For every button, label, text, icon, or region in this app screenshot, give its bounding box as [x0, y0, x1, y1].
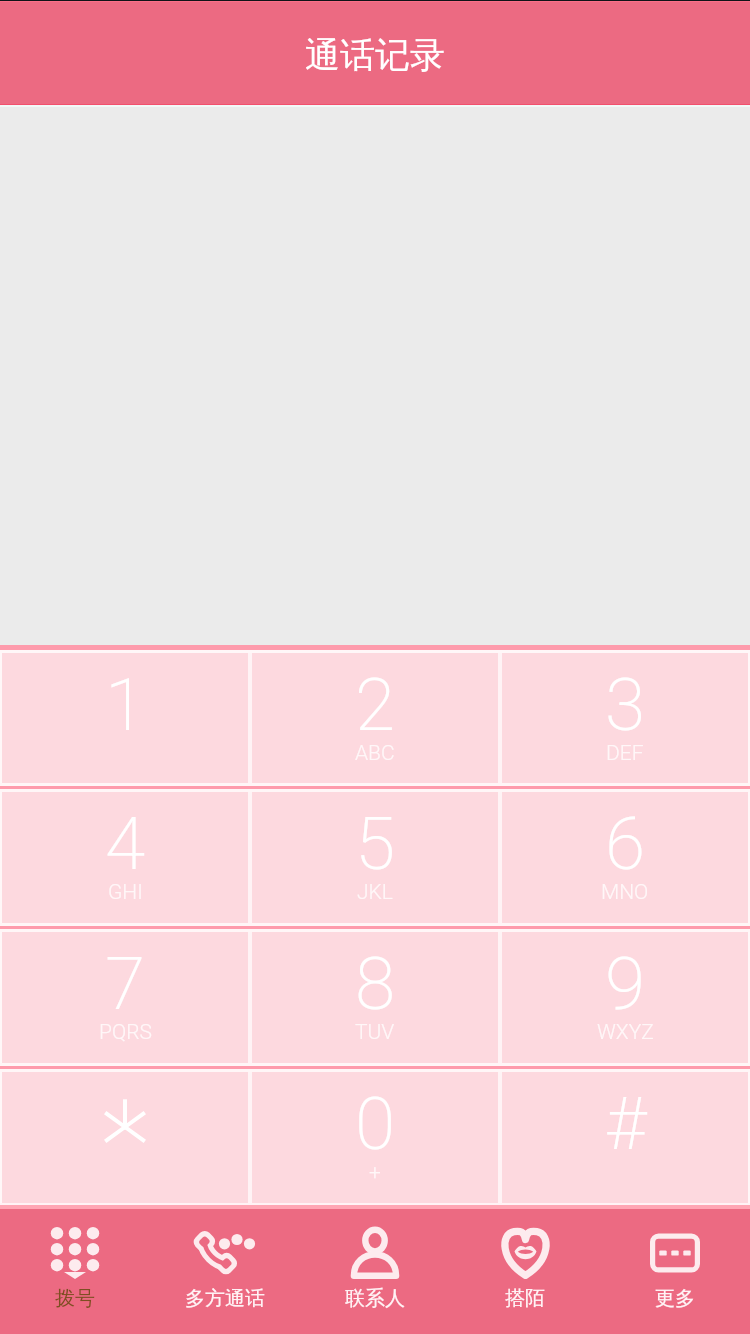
- button[interactable]: 5: [252, 792, 498, 923]
- staticText: 联系人: [345, 1286, 405, 1311]
- staticText: 5: [355, 801, 396, 887]
- staticText: 0: [355, 1081, 396, 1167]
- staticText: 2: [355, 662, 396, 748]
- staticText: 搭陌: [505, 1286, 545, 1311]
- staticText: PQRS: [99, 1020, 152, 1045]
- button[interactable]: [2, 1072, 248, 1203]
- staticText: 更多: [655, 1286, 695, 1311]
- staticText: 1: [105, 662, 146, 748]
- button[interactable]: Match: [450, 1209, 600, 1334]
- button[interactable]: More: [600, 1209, 750, 1334]
- staticText: GHI: [108, 880, 143, 905]
- button[interactable]: Contacts: [300, 1209, 450, 1334]
- button[interactable]: 0: [252, 1072, 498, 1203]
- staticText: 7: [105, 941, 146, 1027]
- staticText: MNO: [601, 880, 649, 905]
- button[interactable]: Dialpad: [0, 1209, 150, 1334]
- staticText: #: [605, 1081, 646, 1167]
- button[interactable]: 6: [502, 792, 748, 923]
- staticText: TUV: [355, 1020, 395, 1045]
- button[interactable]: 8: [252, 932, 498, 1063]
- staticText: 拨号: [55, 1286, 95, 1311]
- staticText: 多方通话: [185, 1286, 265, 1311]
- button[interactable]: 3: [502, 653, 748, 783]
- button[interactable]: 4: [2, 792, 248, 923]
- button[interactable]: 9: [502, 932, 748, 1063]
- staticText: 9: [605, 941, 646, 1027]
- staticText: 通话记录: [305, 33, 445, 77]
- button[interactable]: Conference call: [150, 1209, 300, 1334]
- staticText: 3: [605, 662, 646, 748]
- button[interactable]: 2: [252, 653, 498, 783]
- button[interactable]: #: [502, 1072, 748, 1203]
- staticText: JKL: [357, 880, 393, 905]
- staticText: 8: [355, 941, 396, 1027]
- staticText: +: [369, 1160, 381, 1185]
- staticText: 4: [105, 801, 146, 887]
- staticText: 6: [605, 801, 646, 887]
- button[interactable]: 7: [2, 932, 248, 1063]
- staticText: WXYZ: [597, 1020, 654, 1045]
- staticText: DEF: [606, 741, 644, 766]
- staticText: ABC: [355, 741, 395, 766]
